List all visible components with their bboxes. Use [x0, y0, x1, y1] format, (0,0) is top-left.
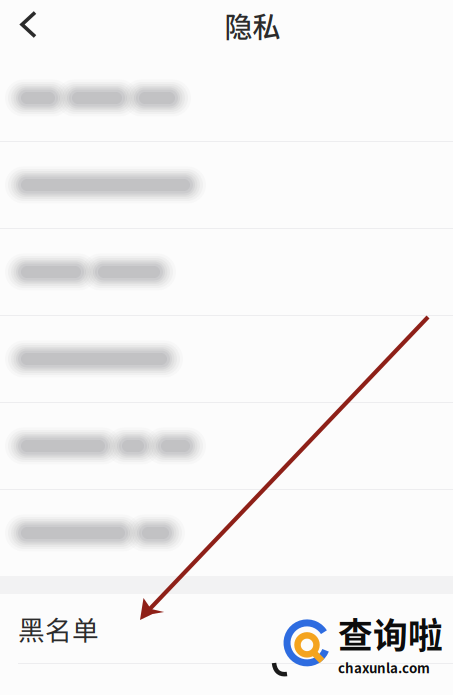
- button[interactable]: [0, 142, 453, 228]
- button[interactable]: Back: [20, 1, 76, 54]
- staticText: 黑名单: [18, 610, 99, 647]
- button[interactable]: [0, 403, 453, 489]
- button[interactable]: [0, 229, 453, 315]
- button[interactable]: 黑名单: [0, 594, 453, 663]
- button[interactable]: [0, 490, 453, 576]
- staticText: chaxunla.com: [338, 658, 430, 677]
- staticText: 隐私: [224, 6, 280, 45]
- button[interactable]: [0, 316, 453, 402]
- staticText: 查询啦: [338, 609, 443, 658]
- button[interactable]: [0, 55, 453, 141]
